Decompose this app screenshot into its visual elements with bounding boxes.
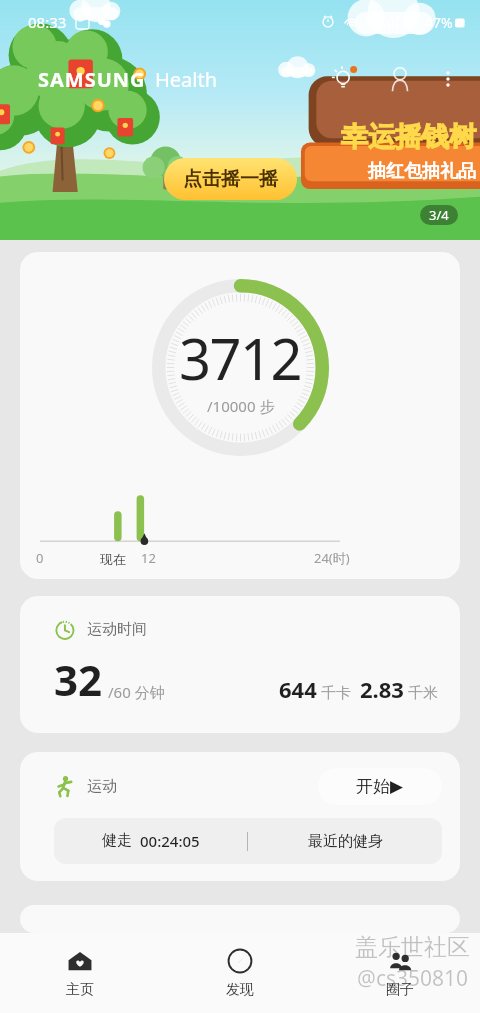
- button[interactable]: 圈子: [320, 933, 480, 1013]
- staticText: /60 分钟: [108, 682, 165, 702]
- button[interactable]: Profile: [380, 59, 420, 99]
- button[interactable]: 开始▶: [318, 768, 442, 805]
- staticText: 开始▶: [356, 776, 404, 797]
- staticText: 47%: [425, 13, 453, 32]
- staticText: SAMSUNG: [38, 66, 146, 93]
- staticText: 千卡: [321, 684, 351, 703]
- button[interactable]: Tips: [324, 58, 366, 100]
- button[interactable]: 运动: [20, 752, 460, 881]
- staticText: 发现: [226, 981, 254, 999]
- staticText: 健走: [102, 831, 132, 850]
- staticText: 12: [141, 549, 156, 567]
- staticText: 24(时): [314, 549, 350, 567]
- staticText: 3712: [179, 320, 302, 396]
- staticText: 2.83: [360, 674, 404, 704]
- staticText: Health: [155, 66, 218, 93]
- staticText: 644: [279, 674, 317, 704]
- button[interactable]: 主页: [0, 933, 160, 1013]
- staticText: @cs350810: [357, 964, 469, 993]
- staticText: 08:33: [28, 12, 67, 32]
- staticText: 0: [36, 549, 44, 567]
- staticText: 运动时间: [87, 620, 147, 639]
- staticText: 3/4: [429, 206, 449, 224]
- staticText: 千米: [408, 684, 438, 703]
- staticText: 运动: [87, 777, 117, 796]
- staticText: 00:24:05: [140, 831, 200, 851]
- button[interactable]: 运动时间: [20, 596, 460, 733]
- staticText: /10000 步: [207, 396, 275, 416]
- button[interactable]: 点击摇一摇: [164, 158, 297, 200]
- staticText: 32: [54, 651, 103, 708]
- staticText: 主页: [66, 981, 94, 999]
- staticText: 最近的健身: [308, 832, 383, 851]
- button[interactable]: 健走: [54, 818, 442, 864]
- staticText: 圈子: [386, 981, 414, 999]
- button[interactable]: 发现: [160, 933, 320, 1013]
- staticText: 点击摇一摇: [183, 167, 278, 191]
- staticText: 盖乐世社区: [355, 933, 470, 962]
- staticText: 抽红包抽礼品: [368, 160, 476, 183]
- staticText: 现在: [100, 551, 126, 567]
- staticText: 幸运摇钱树: [341, 120, 476, 154]
- button[interactable]: 3712: [20, 252, 460, 579]
- button[interactable]: More options: [428, 59, 468, 99]
